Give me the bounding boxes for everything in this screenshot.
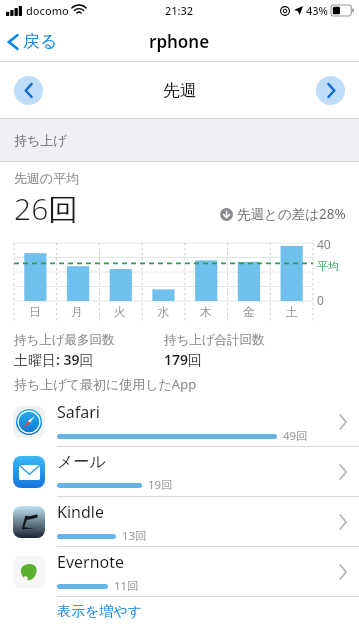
staticText: 49回 <box>283 428 308 444</box>
staticText: 日 <box>29 304 41 319</box>
staticText: 40 <box>317 236 331 252</box>
staticText: 26回 <box>14 188 79 229</box>
staticText: 持ち上げ最多回数 <box>14 332 115 348</box>
staticText: 水 <box>157 304 169 319</box>
staticText: 土 <box>286 304 298 319</box>
staticText: Evernote <box>57 551 125 573</box>
staticText: 21:32 <box>165 3 194 18</box>
staticText: 0 <box>317 292 324 308</box>
staticText: rphone <box>149 30 210 53</box>
staticText: 土曜日: 39回 <box>14 350 94 369</box>
staticText: 火 <box>114 304 126 319</box>
staticText: Safari <box>57 401 100 423</box>
staticText: 先週 <box>163 80 197 101</box>
button[interactable]: 表示を増やす <box>0 597 359 627</box>
staticText: 金 <box>243 304 255 319</box>
button[interactable]: メール <box>0 447 359 497</box>
staticText: docomo <box>26 3 69 18</box>
button[interactable]: 戻る <box>0 27 68 56</box>
staticText: 43% <box>306 3 328 18</box>
staticText: 持ち上げて最初に使用したApp <box>14 375 197 393</box>
staticText: 戻る <box>23 31 58 52</box>
staticText: 木 <box>200 304 212 319</box>
staticText: メール <box>57 452 106 472</box>
staticText: 179回 <box>164 350 203 369</box>
button[interactable]: Kindle <box>0 497 359 547</box>
staticText: 持ち上げ <box>14 132 67 148</box>
staticText: 先週との差は28% <box>237 205 346 223</box>
staticText: 先週の平均 <box>14 170 80 186</box>
staticText: 平均 <box>317 259 339 273</box>
button[interactable]: 前の週 <box>14 76 43 105</box>
staticText: 19回 <box>148 477 173 493</box>
button[interactable]: Evernote <box>0 547 359 597</box>
staticText: 持ち上げ合計回数 <box>164 332 265 348</box>
staticText: 11回 <box>114 578 139 594</box>
staticText: Kindle <box>57 501 104 523</box>
staticText: 13回 <box>122 528 147 544</box>
staticText: 表示を増やす <box>57 603 142 621</box>
button[interactable]: Safari <box>0 397 359 447</box>
staticText: 月 <box>71 304 83 319</box>
button[interactable]: 次の週 <box>316 76 345 105</box>
